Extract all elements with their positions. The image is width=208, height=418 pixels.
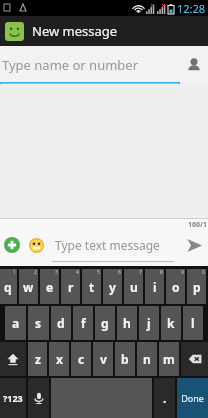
button[interactable]: j: [139, 306, 159, 340]
staticText: i: [153, 279, 157, 295]
staticText: v: [100, 351, 107, 367]
button[interactable]: Shift: [0, 342, 26, 376]
staticText: 4: [76, 269, 79, 276]
button[interactable]: Add recipient from contacts: [180, 46, 208, 84]
staticText: 0: [202, 269, 205, 276]
button[interactable]: z: [28, 342, 47, 376]
staticText: h: [123, 315, 131, 331]
staticText: 160/1: [188, 220, 207, 230]
staticText: g: [101, 315, 109, 331]
staticText: .: [163, 390, 167, 406]
button[interactable]: s: [28, 306, 49, 340]
staticText: l: [191, 315, 195, 331]
staticText: y: [109, 279, 116, 295]
staticText: 1: [13, 269, 16, 276]
staticText: r: [68, 279, 74, 295]
staticText: u: [130, 279, 138, 295]
button[interactable]: 1: [0, 269, 17, 304]
button[interactable]: b: [115, 342, 135, 376]
staticText: m: [163, 351, 175, 367]
staticText: t: [89, 279, 95, 295]
staticText: ?123: [3, 392, 23, 404]
staticText: e: [46, 279, 54, 295]
staticText: New message: [32, 22, 118, 40]
button[interactable]: Done: [177, 378, 208, 418]
staticText: x: [56, 351, 63, 367]
staticText: 2: [34, 269, 37, 276]
button[interactable]: 2: [19, 269, 38, 304]
button[interactable]: a: [5, 306, 26, 340]
staticText: j: [147, 315, 151, 331]
button[interactable]: 5: [82, 269, 101, 304]
staticText: p: [193, 279, 201, 295]
button[interactable]: ?123: [0, 378, 26, 418]
staticText: b: [121, 351, 129, 367]
button[interactable]: g: [95, 306, 115, 340]
staticText: a: [12, 315, 20, 331]
button[interactable]: l: [183, 306, 203, 340]
button[interactable]: x: [49, 342, 69, 376]
button[interactable]: 7: [124, 269, 143, 304]
staticText: n: [143, 351, 151, 367]
staticText: z: [35, 351, 41, 367]
staticText: f: [81, 315, 86, 331]
button[interactable]: 8: [145, 269, 164, 304]
button[interactable]: 3: [40, 269, 59, 304]
button[interactable]: k: [161, 306, 181, 340]
button[interactable]: h: [117, 306, 137, 340]
button[interactable]: n: [137, 342, 157, 376]
staticText: 9: [181, 269, 184, 276]
button[interactable]: New message: [0, 16, 208, 46]
button[interactable]: c: [71, 342, 91, 376]
staticText: 5: [97, 269, 100, 276]
button[interactable]: v: [93, 342, 113, 376]
button[interactable]: d: [51, 306, 71, 340]
staticText: d: [57, 315, 65, 331]
staticText: q: [4, 279, 12, 295]
staticText: Type name or number: [2, 56, 139, 74]
staticText: Type text message: [55, 237, 160, 253]
staticText: 6: [118, 269, 121, 276]
button[interactable]: 4: [61, 269, 80, 304]
button[interactable]: Type name or number: [0, 46, 180, 84]
staticText: 8: [160, 269, 163, 276]
staticText: Done: [181, 392, 204, 404]
staticText: 12:28: [177, 1, 206, 16]
button[interactable]: Send message: [180, 225, 208, 265]
button[interactable]: 9: [166, 269, 185, 304]
button[interactable]: Voice input: [28, 378, 49, 418]
staticText: o: [172, 279, 180, 295]
button[interactable]: .: [154, 378, 175, 418]
button[interactable]: 6: [103, 269, 122, 304]
staticText: w: [23, 279, 34, 295]
staticText: s: [35, 315, 42, 331]
button[interactable]: Type text message: [52, 228, 180, 262]
button[interactable]: Delete: [181, 342, 208, 376]
staticText: 7: [139, 269, 142, 276]
staticText: k: [167, 315, 175, 331]
button[interactable]: 0: [187, 269, 206, 304]
button[interactable]: Add attachment: [0, 233, 24, 257]
button[interactable]: m: [159, 342, 179, 376]
staticText: c: [78, 351, 85, 367]
button[interactable]: Insert emoji: [24, 233, 48, 257]
staticText: 3: [55, 269, 58, 276]
button[interactable]: f: [73, 306, 93, 340]
